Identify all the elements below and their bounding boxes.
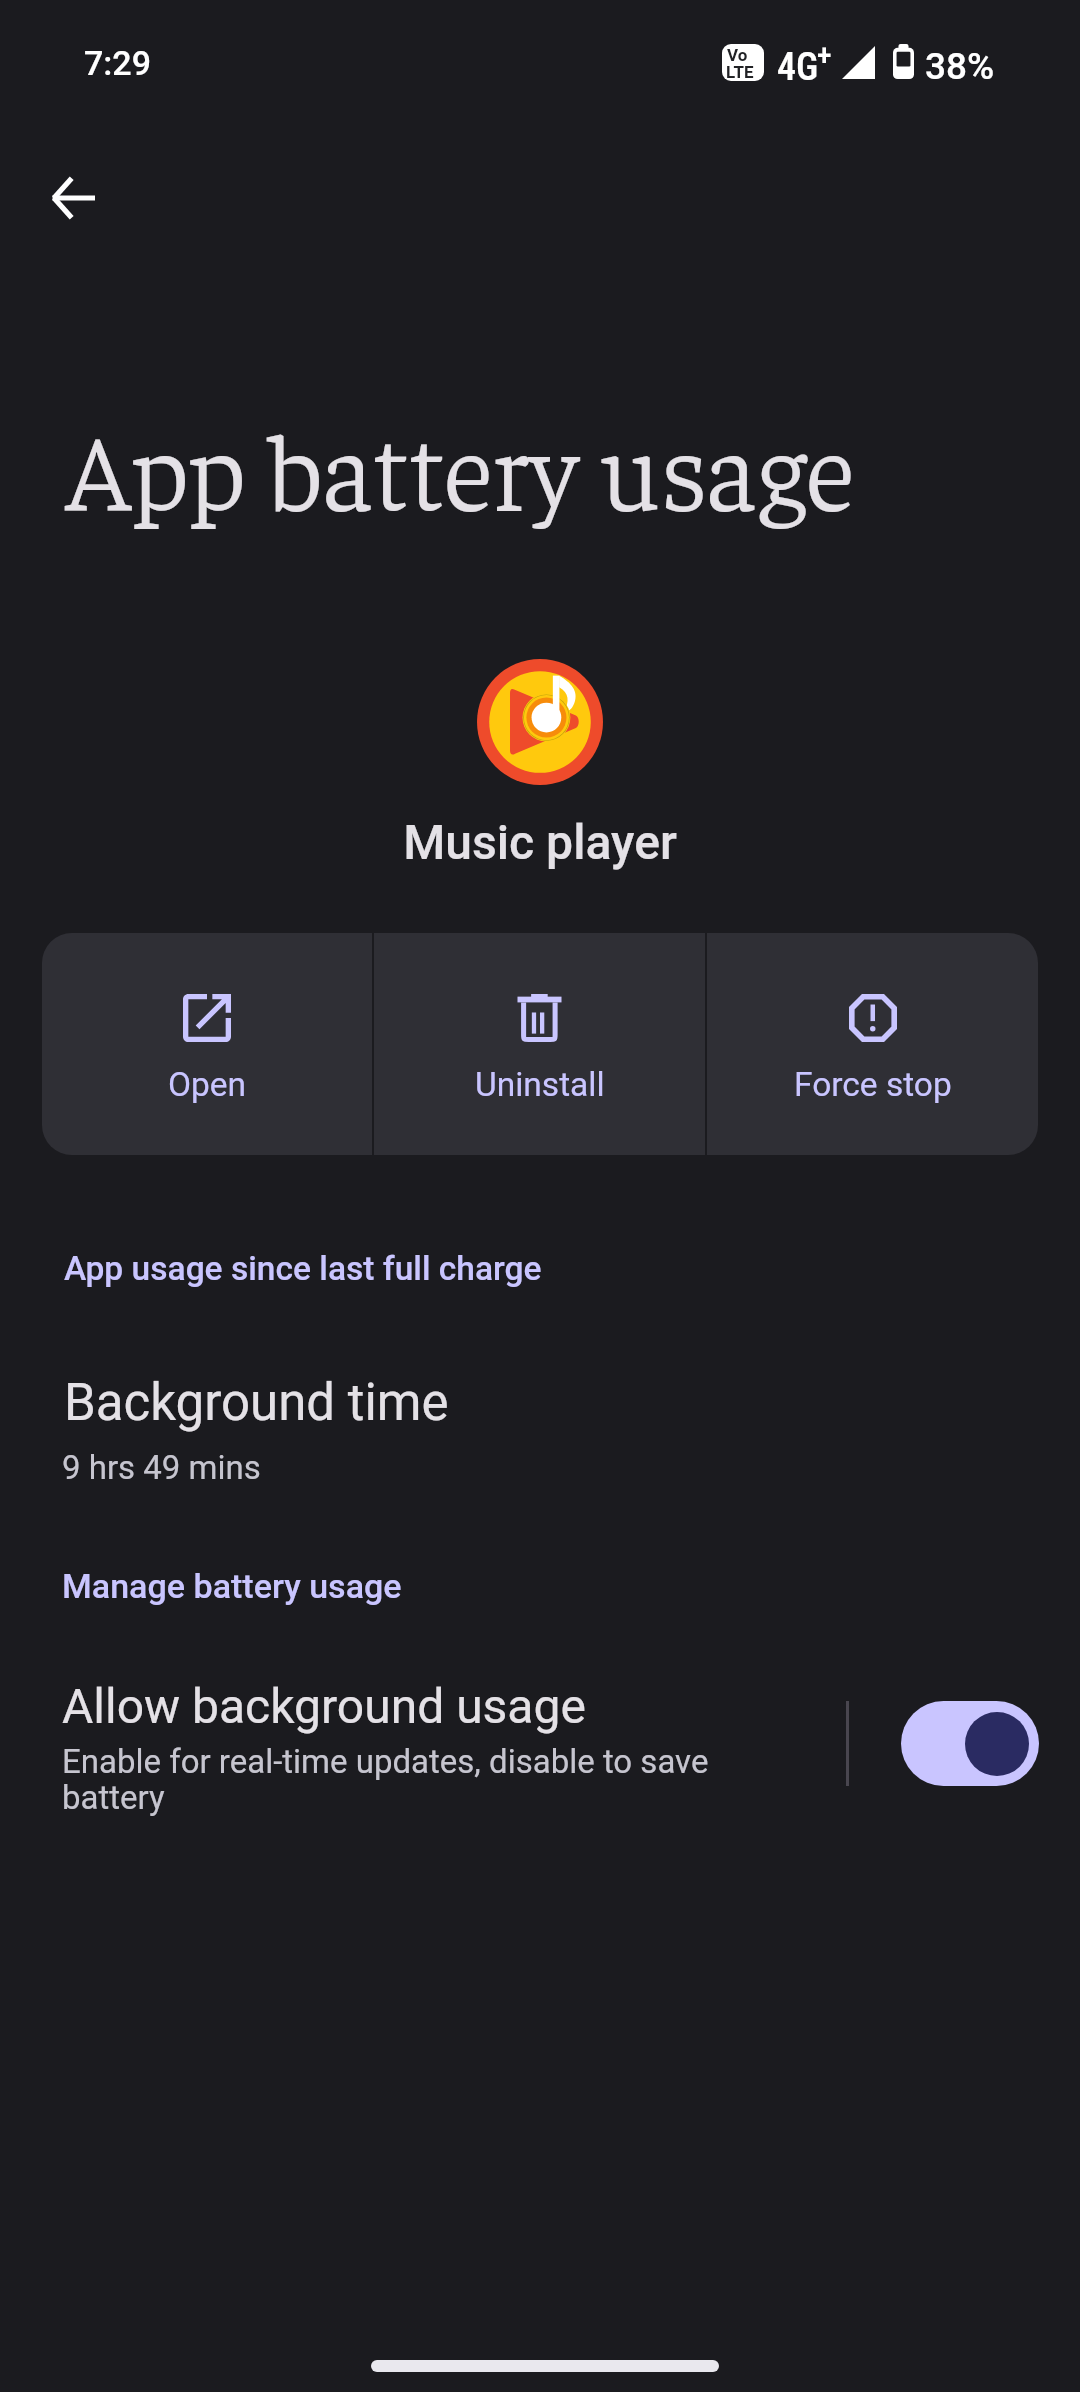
staticText: Enable for real-time updates, disable to…: [62, 1742, 727, 1817]
button[interactable]: Open: [42, 933, 372, 1155]
staticText: Manage battery usage: [62, 1566, 402, 1606]
staticText: Force stop: [794, 1065, 952, 1104]
button[interactable]: Allow background usage: [901, 1701, 1039, 1786]
button[interactable]: Navigate up: [28, 153, 118, 243]
staticText: Music player: [403, 814, 677, 870]
staticText: 38%: [925, 45, 995, 88]
button[interactable]: Uninstall: [374, 933, 705, 1155]
button[interactable]: Force stop: [707, 933, 1038, 1155]
staticText: Uninstall: [475, 1065, 605, 1104]
staticText: 7:29: [84, 43, 151, 83]
staticText: Vo: [727, 45, 748, 65]
staticText: Allow background usage: [62, 1678, 586, 1734]
staticText: LTE: [726, 62, 754, 81]
staticText: App battery usage: [66, 397, 855, 534]
staticText: 4G: [777, 45, 819, 90]
staticText: +: [817, 37, 832, 72]
button[interactable]: Allow background usage: [0, 1650, 1080, 1840]
staticText: 9 hrs 49 mins: [62, 1448, 261, 1487]
staticText: Open: [168, 1065, 247, 1104]
staticText: App usage since last full charge: [64, 1249, 542, 1288]
staticText: Background time: [64, 1373, 449, 1433]
